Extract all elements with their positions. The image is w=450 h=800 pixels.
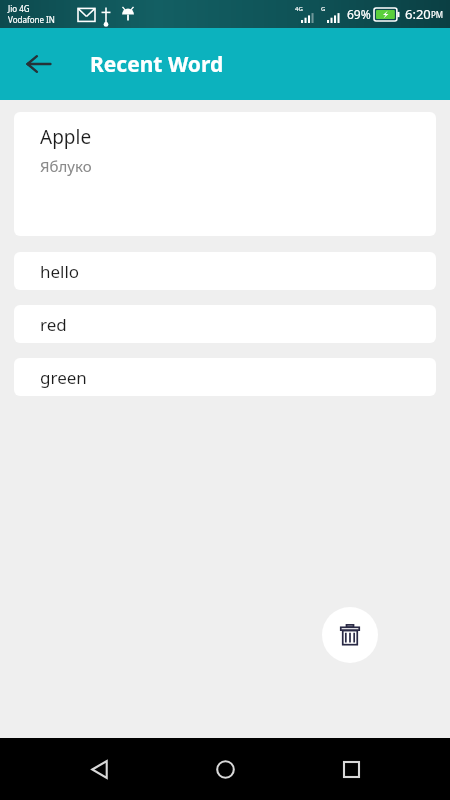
staticText: Яблуко <box>40 156 92 176</box>
button[interactable]: Back <box>18 43 60 85</box>
button[interactable]: Back <box>72 742 126 796</box>
staticText: red <box>40 313 67 336</box>
staticText: Vodafone IN <box>8 14 55 25</box>
staticText: Jio 4G <box>8 3 30 14</box>
staticText: Recent Word <box>90 50 224 79</box>
button[interactable]: Home <box>198 742 252 796</box>
staticText: G <box>321 5 326 13</box>
button[interactable]: Recents <box>324 742 378 796</box>
staticText: 6:20 <box>405 5 431 23</box>
button[interactable]: Delete all <box>322 607 378 663</box>
staticText: Apple <box>40 124 92 150</box>
staticText: 69% <box>347 6 371 22</box>
staticText: hello <box>40 260 80 283</box>
button[interactable]: green <box>14 358 436 396</box>
staticText: 4G <box>295 5 303 13</box>
staticText: PM <box>431 9 444 20</box>
staticText: green <box>40 366 87 389</box>
button[interactable]: red <box>14 305 436 343</box>
button[interactable]: hello <box>14 252 436 290</box>
button[interactable]: Apple <box>14 112 436 236</box>
